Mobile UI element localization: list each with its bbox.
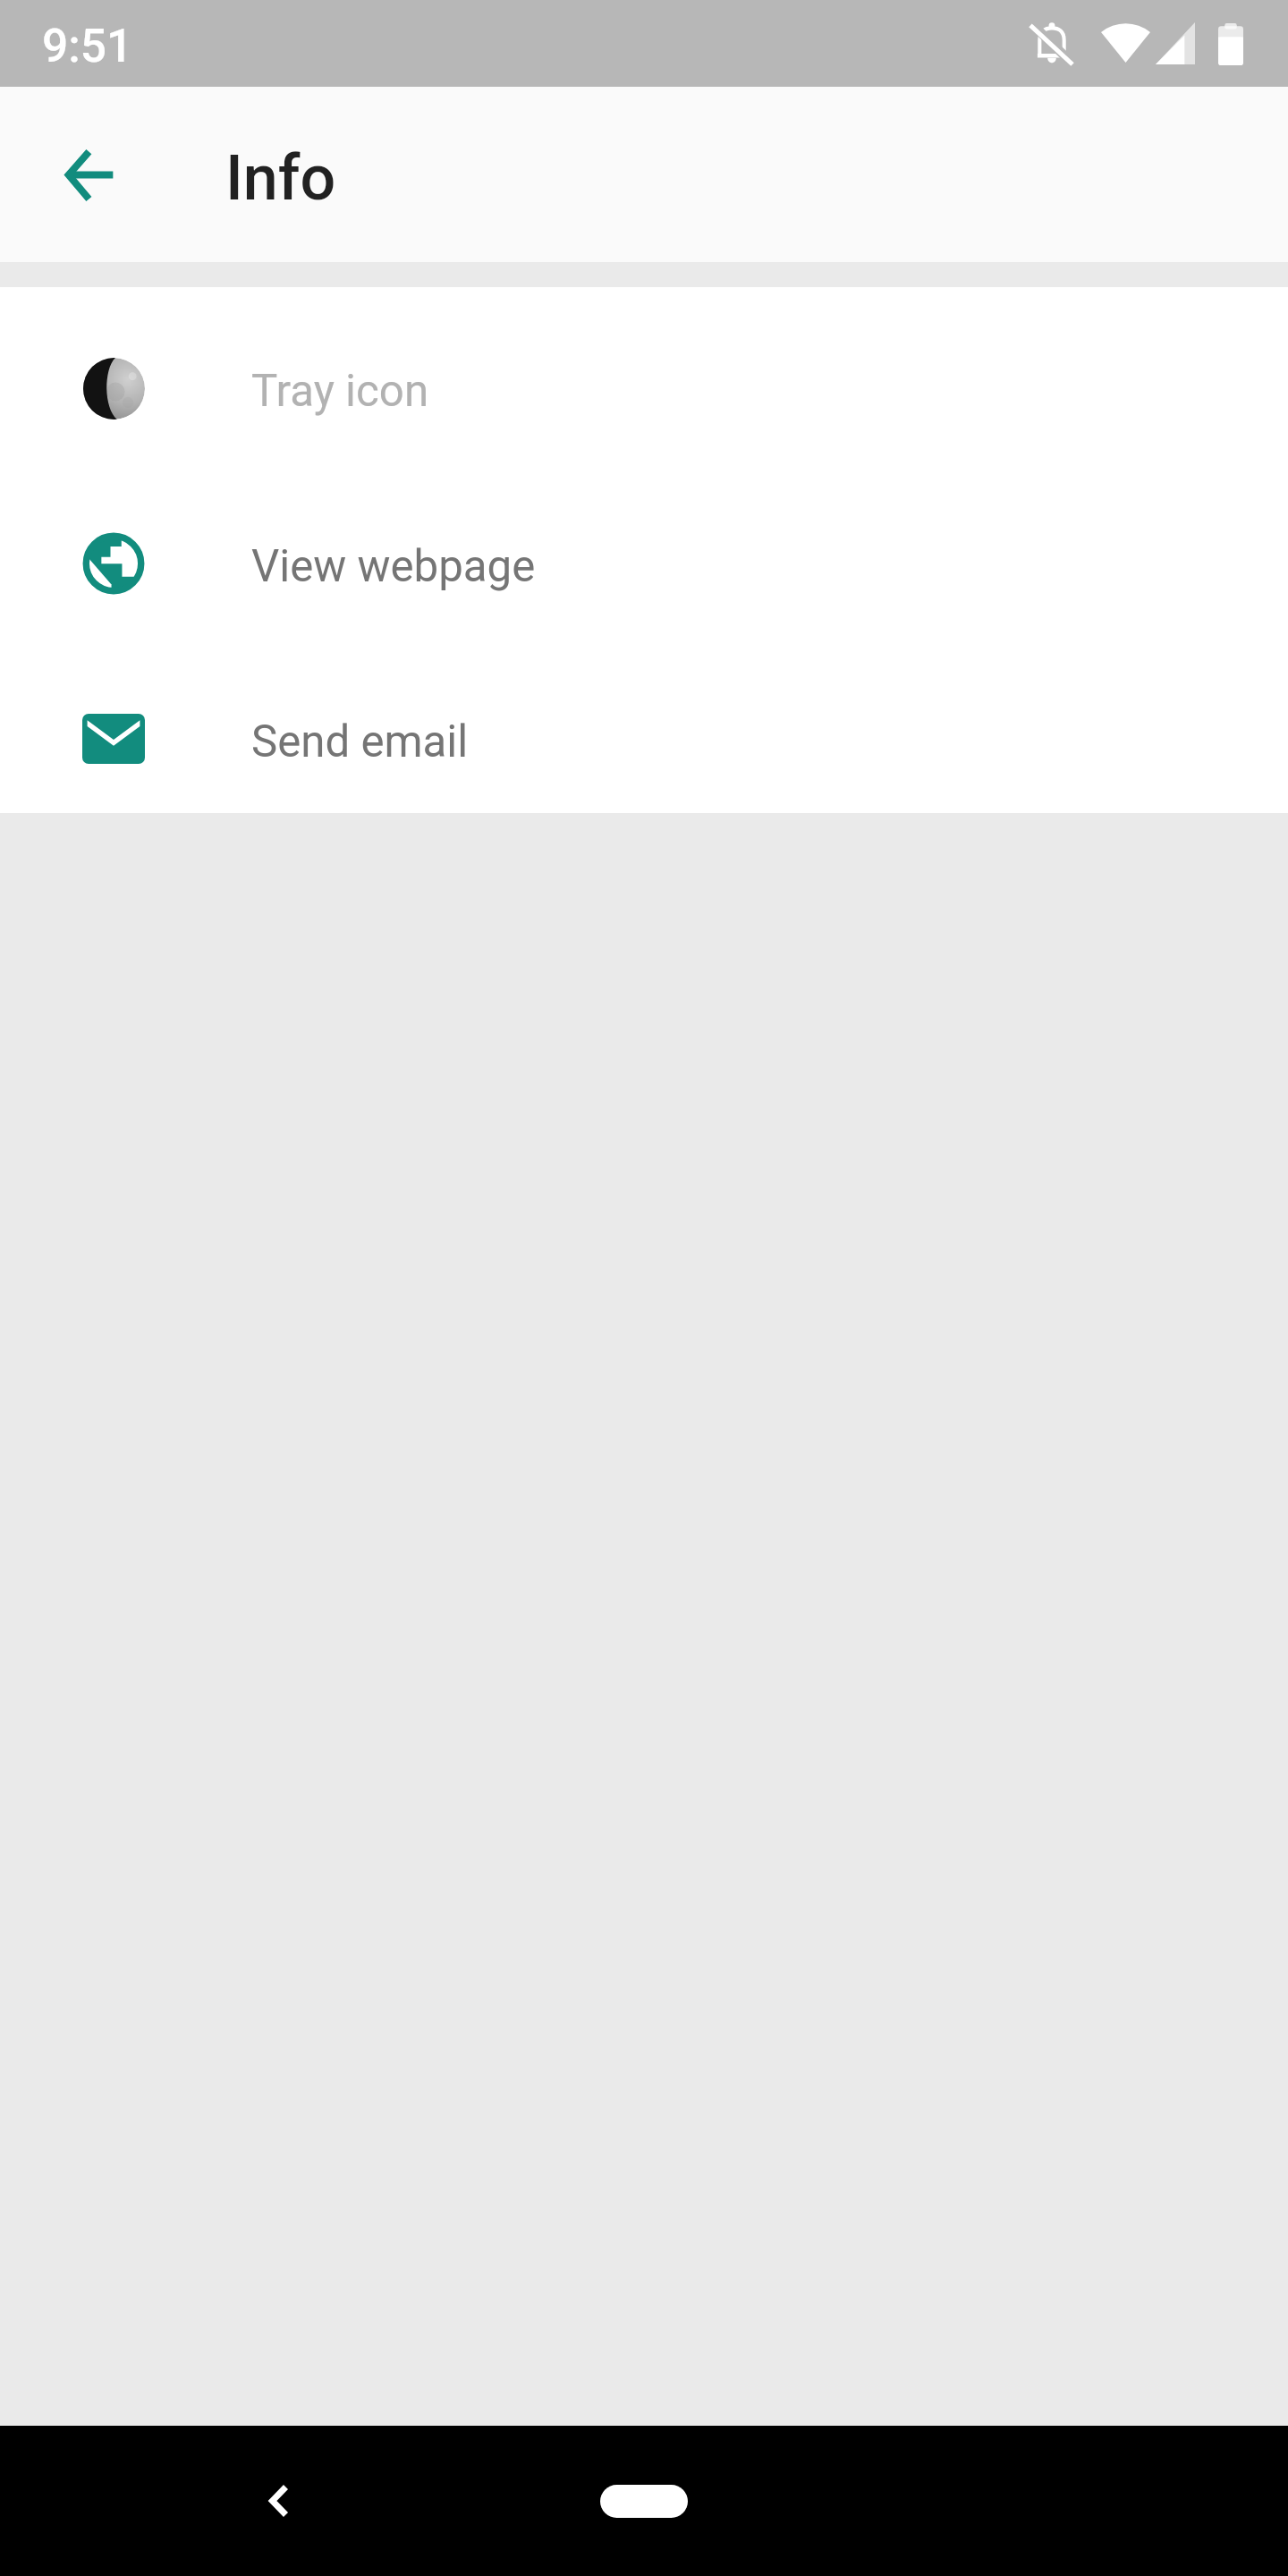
button[interactable]: Tray icon [0, 301, 1288, 476]
button[interactable]: Back [241, 2463, 317, 2538]
staticText: Tray icon [251, 365, 429, 417]
button[interactable]: Send email [0, 651, 1288, 826]
staticText: Info [225, 141, 336, 215]
other: Home [600, 2485, 688, 2518]
button[interactable]: View webpage [0, 476, 1288, 651]
staticText: View webpage [251, 540, 536, 592]
staticText: 9:51 [42, 19, 133, 72]
staticText: Send email [251, 716, 469, 767]
button[interactable]: Back [13, 99, 163, 250]
